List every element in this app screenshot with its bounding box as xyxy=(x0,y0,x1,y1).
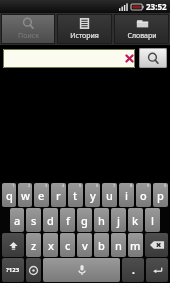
staticText: e xyxy=(38,188,45,203)
staticText: 23:52 xyxy=(146,1,167,12)
button[interactable]: Enter xyxy=(146,258,168,282)
staticText: 5 xyxy=(79,183,82,188)
staticText: w xyxy=(21,188,30,203)
staticText: x xyxy=(48,238,54,253)
staticText: s xyxy=(31,213,37,228)
staticText: p xyxy=(157,188,164,203)
button[interactable]: z xyxy=(26,233,41,257)
staticText: f xyxy=(66,213,70,228)
button[interactable]: Shift xyxy=(2,233,24,257)
button[interactable]: c xyxy=(60,233,75,257)
staticText: v xyxy=(82,238,88,253)
staticText: d xyxy=(47,213,54,228)
staticText: 2 xyxy=(28,183,31,188)
staticText: b xyxy=(98,238,105,253)
staticText: r xyxy=(56,188,61,203)
button[interactable]: Backspace xyxy=(145,233,168,257)
button[interactable]: Settings xyxy=(26,258,41,282)
staticText: c xyxy=(65,238,71,253)
staticText: m xyxy=(130,238,141,253)
button[interactable]: b xyxy=(94,233,109,257)
staticText: u xyxy=(106,188,113,203)
other: Clear xyxy=(124,53,135,64)
staticText: 6 xyxy=(96,183,99,188)
staticText: 4 xyxy=(62,183,65,188)
button[interactable]: 0 xyxy=(153,183,168,207)
staticText: ?123 xyxy=(6,266,20,274)
staticText: k xyxy=(132,213,139,228)
button[interactable]: Clear xyxy=(3,49,135,68)
button[interactable]: Словари xyxy=(114,14,169,44)
button[interactable]: l xyxy=(145,208,160,232)
staticText: l xyxy=(151,213,154,228)
button[interactable]: 1 xyxy=(2,183,16,207)
staticText: 8 xyxy=(130,183,133,188)
staticText: t xyxy=(73,188,78,203)
button[interactable]: k xyxy=(128,208,143,232)
button[interactable]: n xyxy=(111,233,126,257)
button[interactable]: 2 xyxy=(18,183,32,207)
button[interactable]: h xyxy=(94,208,109,232)
button[interactable]: f xyxy=(60,208,75,232)
staticText: 0 xyxy=(164,183,167,188)
button[interactable]: 4 xyxy=(51,183,66,207)
button[interactable]: v xyxy=(77,233,92,257)
staticText: i xyxy=(125,188,128,203)
staticText: 9 xyxy=(147,183,150,188)
staticText: a xyxy=(14,213,21,228)
staticText: j xyxy=(117,213,120,228)
staticText: Словари xyxy=(127,31,157,41)
staticText: n xyxy=(115,238,122,253)
staticText: . xyxy=(132,263,135,277)
button[interactable]: d xyxy=(43,208,58,232)
button[interactable]: Space xyxy=(43,258,120,282)
button[interactable]: 6 xyxy=(85,183,100,207)
button[interactable]: g xyxy=(77,208,92,232)
button[interactable]: s xyxy=(26,208,41,232)
button[interactable]: 3 xyxy=(34,183,49,207)
staticText: z xyxy=(31,238,37,253)
button[interactable]: 7 xyxy=(102,183,117,207)
button[interactable]: Поиск xyxy=(1,14,55,44)
button[interactable]: a xyxy=(10,208,24,232)
button[interactable]: j xyxy=(111,208,126,232)
staticText: o xyxy=(140,188,147,203)
staticText: 3 xyxy=(45,183,48,188)
button[interactable]: . xyxy=(122,258,144,282)
button[interactable]: m xyxy=(128,233,143,257)
button[interactable]: x xyxy=(43,233,58,257)
staticText: История xyxy=(70,31,99,41)
button[interactable]: 8 xyxy=(119,183,134,207)
staticText: q xyxy=(6,188,13,203)
button[interactable]: 5 xyxy=(68,183,83,207)
staticText: Поиск xyxy=(18,31,39,41)
button[interactable]: История xyxy=(57,14,112,44)
staticText: 1 xyxy=(12,183,15,188)
staticText: y xyxy=(90,188,96,203)
staticText: 7 xyxy=(113,183,116,188)
button[interactable]: 9 xyxy=(136,183,151,207)
staticText: h xyxy=(98,213,105,228)
button[interactable]: ?123 xyxy=(2,258,24,282)
button[interactable]: Search xyxy=(139,48,167,68)
staticText: g xyxy=(81,213,88,228)
